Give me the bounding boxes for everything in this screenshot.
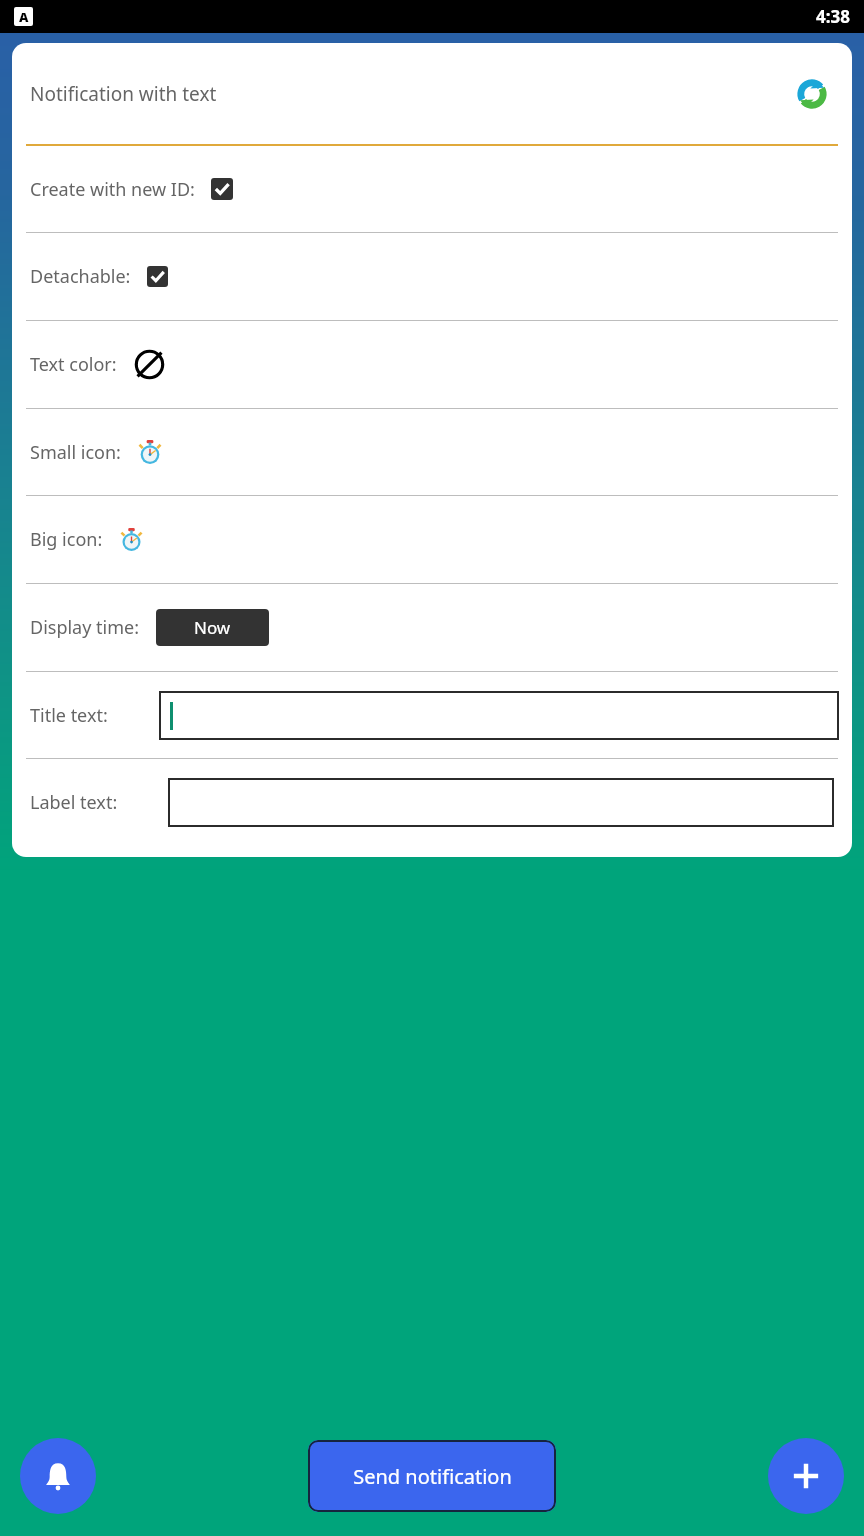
button[interactable]: Small icon: [12,409,852,495]
staticText: Display time: [30,615,140,640]
other: Stopwatch icon [119,527,144,552]
button[interactable]: Detachable: [12,233,852,320]
other: No color [133,348,166,381]
staticText: Label text: [30,790,118,815]
button[interactable] [159,691,839,740]
button[interactable]: Add [768,1438,844,1514]
button[interactable]: Text color: [12,321,852,408]
button[interactable] [168,778,834,827]
button[interactable]: Send notification [308,1440,556,1512]
staticText: A [19,8,29,26]
staticText: 4:38 [816,5,850,28]
staticText: Title text: [30,703,108,728]
staticText: Notification with text [30,81,217,107]
staticText: Now [194,616,231,639]
button[interactable]: Checked [147,266,168,287]
staticText: Big icon: [30,527,103,552]
button[interactable]: Notifications [20,1438,96,1514]
staticText: Small icon: [30,440,121,465]
button[interactable]: Refresh [792,74,832,114]
button[interactable]: Now [156,609,269,646]
button[interactable]: Create with new ID: [12,146,852,232]
staticText: Text color: [30,352,117,377]
staticText: Detachable: [30,264,131,289]
button[interactable]: Checked [211,178,233,200]
other: Stopwatch icon [137,439,163,465]
staticText: Send notification [353,1463,512,1490]
button[interactable]: Big icon: [12,496,852,583]
staticText: Create with new ID: [30,177,195,202]
button[interactable]: Display time: [12,584,852,671]
